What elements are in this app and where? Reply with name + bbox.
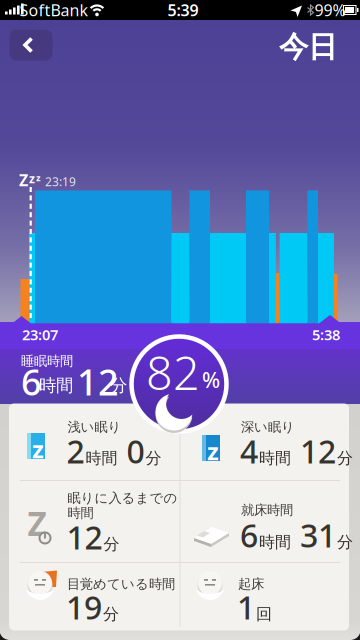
staticText: z <box>32 433 44 465</box>
staticText: 時間 <box>39 375 73 396</box>
staticText: 0 <box>118 430 144 472</box>
staticText: 深い眠り <box>241 419 295 435</box>
staticText: 目覚めている時間 <box>67 576 175 592</box>
staticText: 分 <box>337 532 353 552</box>
staticText: 分 <box>110 375 127 396</box>
staticText: 23:07 <box>22 325 58 344</box>
staticText: z <box>207 435 219 467</box>
staticText: 12 <box>66 516 102 558</box>
staticText: 1 <box>237 586 255 628</box>
staticText: 起床 <box>238 576 264 592</box>
staticText: 浅い眠り <box>67 419 121 435</box>
staticText: 分 <box>337 448 353 468</box>
staticText: 12 <box>292 430 336 472</box>
staticText: 6 <box>21 358 42 405</box>
staticText: 時間 <box>67 505 93 521</box>
staticText: 時間 <box>259 448 291 468</box>
staticText: 23:19 <box>42 174 76 189</box>
staticText: 6 <box>240 514 258 556</box>
staticText: 眠りに入るまでの <box>67 490 177 506</box>
staticText: Z <box>19 169 28 191</box>
staticText: 12 <box>77 358 119 405</box>
staticText: 時間 <box>259 532 291 552</box>
staticText: 分 <box>103 534 119 554</box>
staticText: 99% <box>314 0 345 21</box>
staticText: z <box>29 171 35 186</box>
staticText: 就床時間 <box>241 502 293 518</box>
staticText: 今日 <box>279 29 337 65</box>
staticText: Z <box>27 501 46 545</box>
staticText: 睡眠時間 <box>21 353 73 369</box>
staticText: 分 <box>145 448 161 468</box>
staticText: 4 <box>240 430 258 472</box>
staticText: 5:38 <box>312 325 340 344</box>
staticText: 分 <box>103 604 119 624</box>
staticText: 5:39 <box>167 0 198 21</box>
staticText: 時間 <box>85 448 117 468</box>
button[interactable]: Back <box>9 29 52 60</box>
staticText: z <box>36 171 41 184</box>
staticText: 回 <box>256 604 272 624</box>
staticText: % <box>202 366 220 394</box>
staticText: SoftBank <box>19 0 88 21</box>
staticText: 82 <box>146 341 200 403</box>
staticText: 2 <box>66 430 84 472</box>
staticText: 19 <box>66 586 102 628</box>
staticText: 31 <box>292 514 336 556</box>
